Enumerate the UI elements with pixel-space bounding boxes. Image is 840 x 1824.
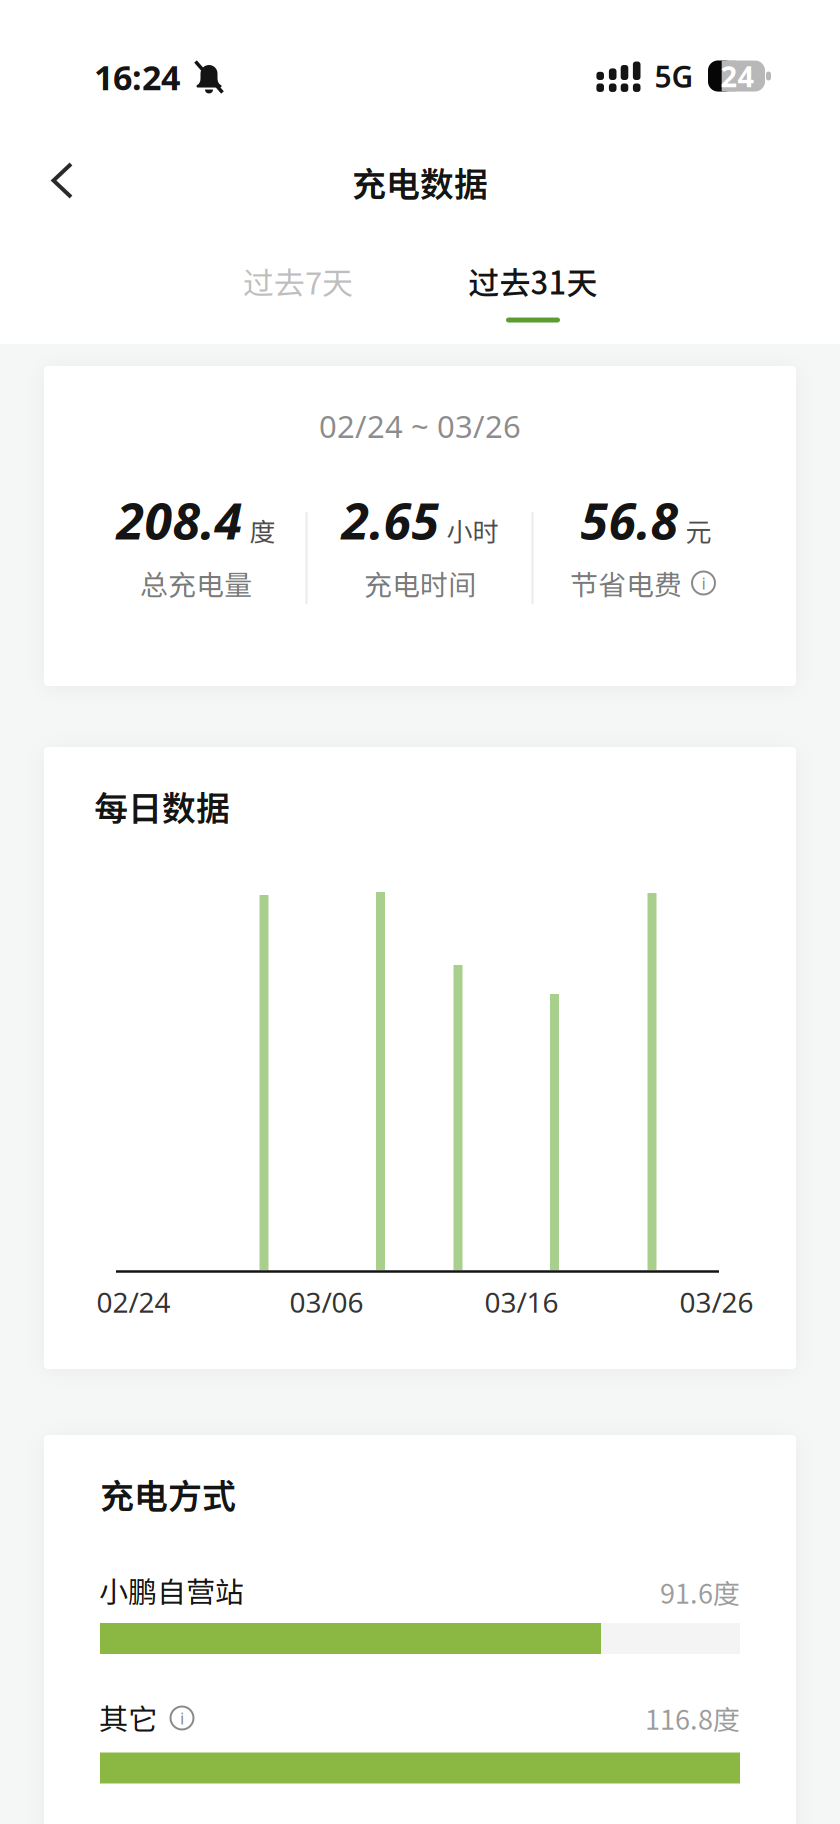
staticText: 116.8度 <box>645 1698 740 1738</box>
staticText: 208.4 <box>116 486 242 554</box>
button[interactable]: 节省电费 <box>570 563 716 603</box>
staticText: 91.6度 <box>660 1572 740 1612</box>
staticText: 每日数据 <box>94 781 230 831</box>
staticText: 其它 <box>99 1696 157 1738</box>
staticText: 充电方式 <box>100 1469 236 1519</box>
staticText: 小时 <box>446 511 498 549</box>
staticText: 5G <box>654 56 693 96</box>
staticText: 元 <box>685 511 711 549</box>
button[interactable]: i <box>164 1700 200 1736</box>
staticText: 小鹏自营站 <box>99 1569 244 1611</box>
staticText: 充电时间 <box>364 563 476 603</box>
staticText: 02/24 ~ 03/26 <box>319 405 521 447</box>
staticText: 03/06 <box>289 1283 363 1321</box>
staticText: i <box>701 571 705 595</box>
button[interactable]: 过去7天 <box>203 241 393 321</box>
staticText: i <box>180 1706 184 1730</box>
staticText: 03/26 <box>679 1283 753 1321</box>
staticText: 16:24 <box>94 54 180 100</box>
staticText: 2.65 <box>341 486 439 554</box>
staticText: 节省电费 <box>570 563 682 603</box>
staticText: 03/16 <box>484 1283 558 1321</box>
staticText: 56.8 <box>580 486 678 554</box>
button[interactable]: 过去31天 <box>433 241 633 321</box>
staticText: 度 <box>249 511 275 549</box>
button[interactable] <box>26 144 98 216</box>
staticText: 02/24 <box>96 1283 170 1321</box>
staticText: 充电数据 <box>352 157 488 207</box>
staticText: 过去31天 <box>468 259 597 303</box>
staticText: 24 <box>720 56 754 96</box>
staticText: 总充电量 <box>140 563 252 603</box>
staticText: 过去7天 <box>243 259 353 303</box>
